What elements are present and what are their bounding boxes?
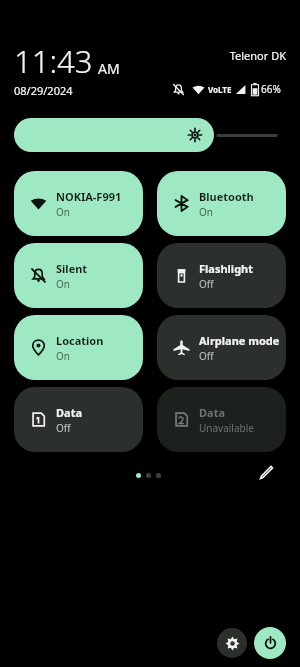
staticText: 11:43 xyxy=(14,40,93,82)
staticText: 08/29/2024 xyxy=(14,83,73,98)
staticText: Location xyxy=(56,333,104,348)
button[interactable]: Location xyxy=(14,315,143,380)
button[interactable]: Power xyxy=(254,627,286,659)
staticText: Data xyxy=(199,405,226,420)
staticText: Silent xyxy=(56,261,88,276)
button[interactable]: Silent xyxy=(14,243,143,308)
staticText: NOKIA-F991 xyxy=(56,189,122,204)
button[interactable]: Edit xyxy=(254,460,278,484)
button[interactable]: Data xyxy=(14,387,143,452)
button[interactable]: Airplane mode xyxy=(157,315,286,380)
staticText: VoLTE xyxy=(208,84,232,95)
staticText: Telenor DK xyxy=(190,48,286,63)
button[interactable]: Brightness xyxy=(14,118,214,152)
staticText: Bluetooth xyxy=(199,189,254,204)
staticText: Off xyxy=(199,277,214,291)
staticText: 66% xyxy=(261,82,281,96)
staticText: Off xyxy=(199,349,214,363)
staticText: On xyxy=(199,205,213,219)
staticText: Airplane mode xyxy=(199,333,280,348)
button[interactable]: Flashlight xyxy=(157,243,286,308)
staticText: Data xyxy=(56,405,83,420)
button[interactable]: Data xyxy=(157,387,286,452)
staticText: Unavailable xyxy=(199,421,254,435)
button[interactable]: Bluetooth xyxy=(157,171,286,236)
staticText: On xyxy=(56,349,70,363)
staticText: AM xyxy=(98,59,120,78)
button[interactable]: NOKIA-F991 xyxy=(14,171,143,236)
staticText: On xyxy=(56,205,70,219)
button[interactable]: Settings xyxy=(217,628,247,658)
staticText: Off xyxy=(56,421,71,435)
staticText: On xyxy=(56,277,70,291)
staticText: Flashlight xyxy=(199,261,254,276)
